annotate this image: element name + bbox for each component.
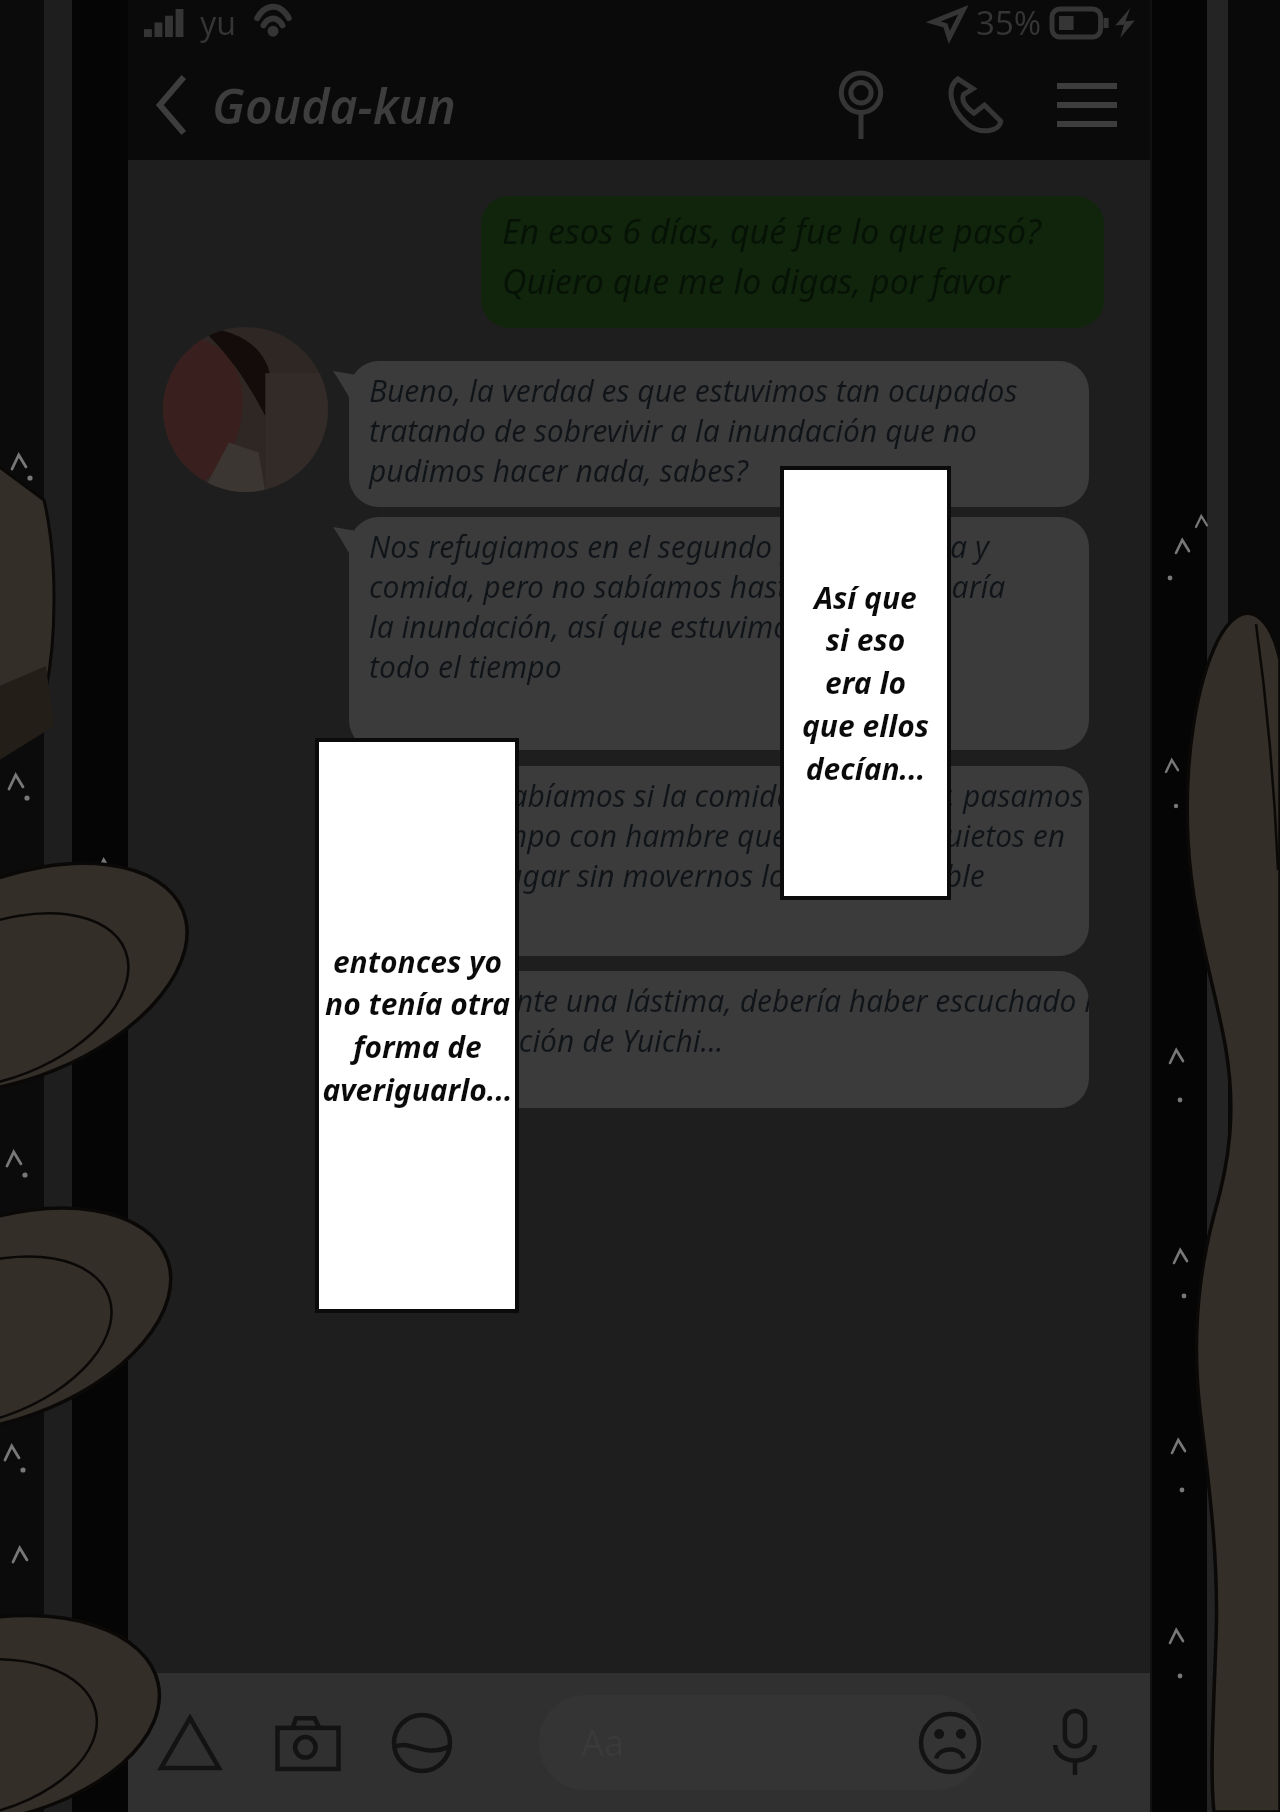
button[interactable]: entonces yo no tenía otra forma de averi… bbox=[319, 742, 515, 1309]
staticText: 35% bbox=[976, 0, 1042, 45]
staticText: Bueno, la verdad es que estuvimos tan oc… bbox=[369, 370, 1018, 491]
button[interactable]: Nos refugiamos en el segundo piso con ag… bbox=[349, 517, 1089, 750]
button[interactable]: Camera bbox=[262, 1697, 354, 1789]
staticText: Tampoco sabíamos si la comida iba a dura… bbox=[369, 775, 1084, 896]
button[interactable]: Tampoco sabíamos si la comida iba a dura… bbox=[349, 766, 1089, 956]
button[interactable]: Search bbox=[822, 66, 900, 144]
staticText: yu bbox=[200, 1, 237, 45]
button[interactable]: Profile picture bbox=[163, 327, 328, 492]
button[interactable]: Aa bbox=[539, 1695, 983, 1790]
staticText: entonces yo no tenía otra forma de averi… bbox=[322, 941, 513, 1110]
button[interactable]: Así que si eso era lo que ellos decían..… bbox=[784, 470, 947, 896]
button[interactable]: Add bbox=[144, 1697, 236, 1789]
staticText: Gouda-kun bbox=[212, 73, 456, 138]
staticText: Así que si eso era lo que ellos decían..… bbox=[802, 577, 929, 789]
button[interactable]: Back bbox=[144, 76, 202, 134]
button[interactable]: Bueno, la verdad es que estuvimos tan oc… bbox=[349, 361, 1089, 507]
button[interactable]: Voice message bbox=[1029, 1697, 1121, 1789]
staticText: Nos refugiamos en el segundo piso con ag… bbox=[369, 526, 1006, 687]
button[interactable]: Fue realmente una lástima, debería haber… bbox=[349, 971, 1089, 1108]
button[interactable]: En esos 6 días, qué fue lo que pasó? Qui… bbox=[481, 196, 1104, 328]
staticText: En esos 6 días, qué fue lo que pasó? Qui… bbox=[502, 208, 1041, 304]
button[interactable]: Gallery bbox=[376, 1697, 468, 1789]
button[interactable]: Call bbox=[935, 66, 1013, 144]
button[interactable]: Emoji bbox=[904, 1697, 996, 1789]
staticText: Fue realmente una lástima, debería haber… bbox=[369, 980, 1089, 1061]
button[interactable]: Menu bbox=[1048, 66, 1126, 144]
